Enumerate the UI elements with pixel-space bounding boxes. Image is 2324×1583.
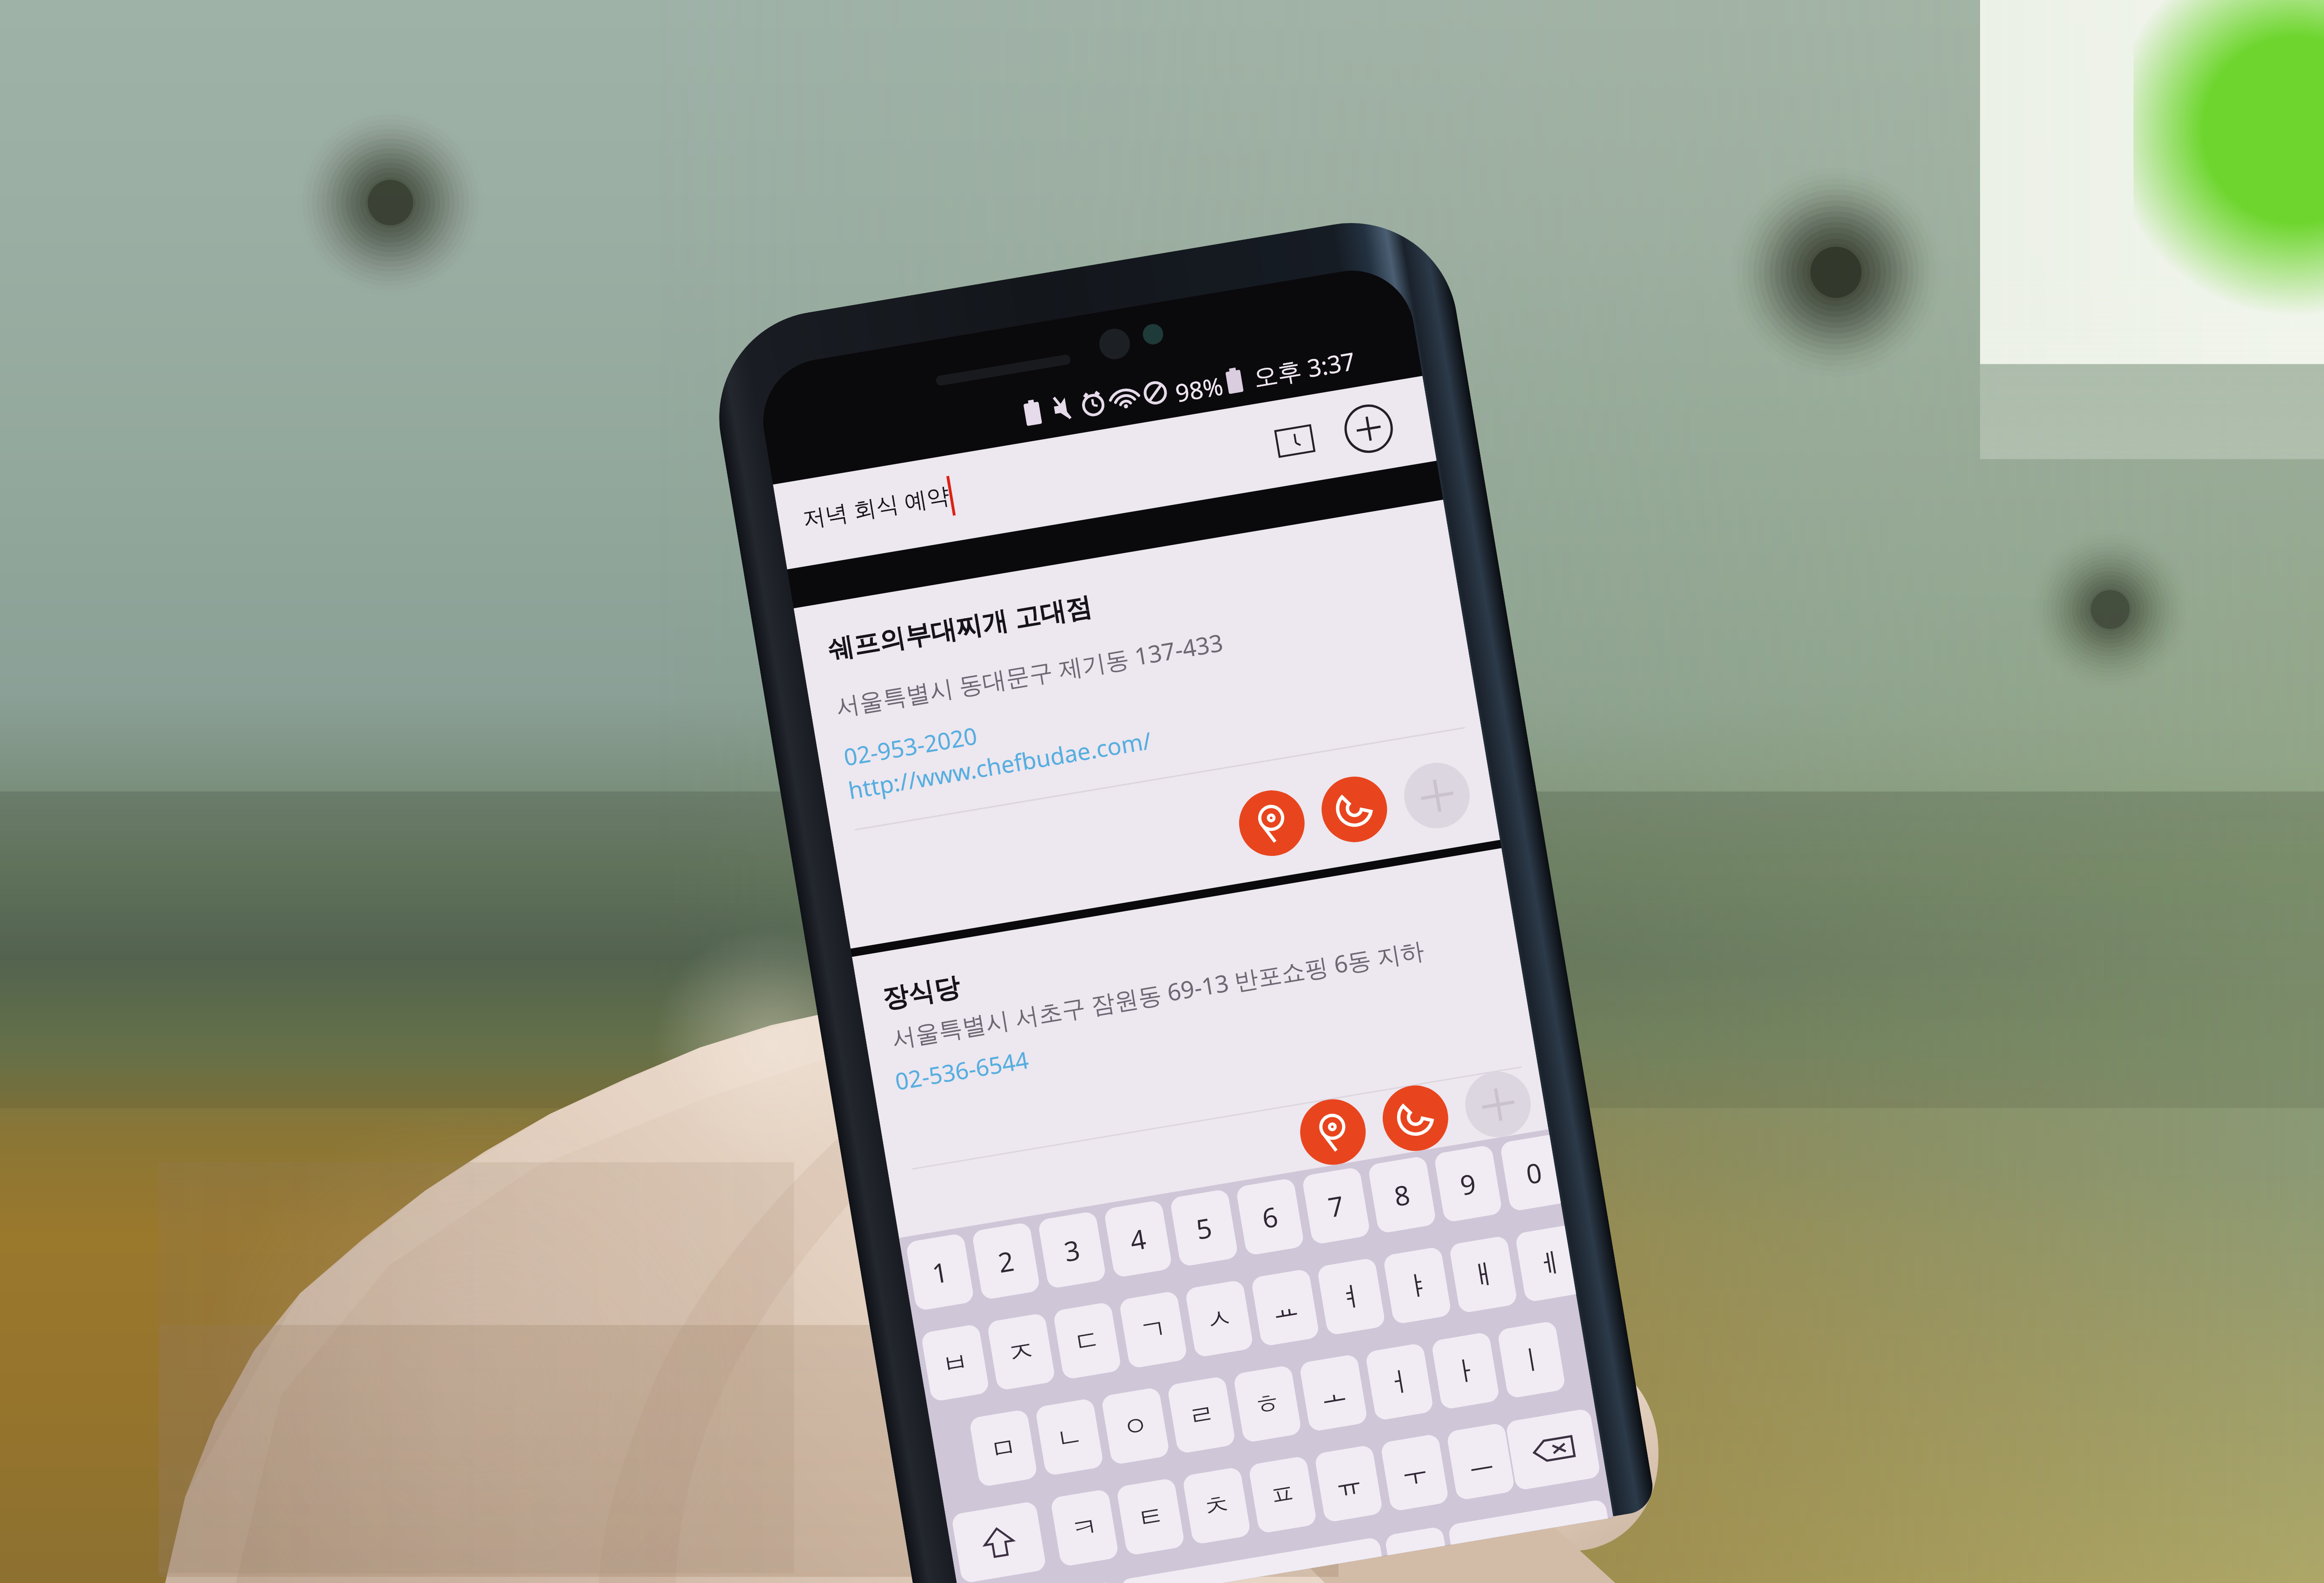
staticText: ㅐ <box>1467 1256 1499 1294</box>
button[interactable]: ㅡ <box>1446 1422 1515 1501</box>
staticText: 쉐프의부대찌개 고대점 <box>825 587 1094 666</box>
button[interactable]: Show on map <box>1295 1094 1371 1170</box>
staticText: 6 <box>1259 1198 1281 1236</box>
button[interactable]: Backspace <box>1505 1408 1601 1491</box>
button[interactable]: ㄱ <box>1119 1290 1188 1369</box>
staticText: ㅇ <box>1119 1407 1152 1445</box>
button[interactable]: 5 <box>1169 1189 1239 1267</box>
staticText: ㅓ <box>1383 1363 1416 1401</box>
staticText: ㄱ <box>1137 1311 1169 1349</box>
button[interactable]: Show on map <box>1234 785 1310 861</box>
staticText: 장식당 <box>880 970 962 1016</box>
button[interactable]: Add to list <box>1460 1067 1536 1142</box>
button[interactable]: ㅣ <box>1497 1321 1566 1399</box>
staticText: ㅎ <box>1251 1385 1284 1423</box>
staticText: . <box>1413 1549 1420 1551</box>
staticText: ㅏ <box>1449 1352 1482 1390</box>
staticText: ㅗ <box>1317 1374 1350 1412</box>
button[interactable]: ㅈ <box>987 1313 1056 1391</box>
button[interactable]: 3 <box>1037 1211 1107 1289</box>
staticText: 7 <box>1325 1187 1347 1225</box>
button[interactable]: ㅜ <box>1380 1433 1449 1512</box>
staticText: ㄹ <box>1185 1396 1218 1434</box>
staticText: ㅛ <box>1269 1289 1301 1327</box>
staticText: ㅌ <box>1135 1498 1167 1536</box>
staticText: 02-536-6544 <box>893 1044 1031 1097</box>
button[interactable]: ㅔ <box>1515 1225 1576 1303</box>
staticText: ㅕ <box>1335 1278 1367 1316</box>
staticText: 9 <box>1457 1164 1479 1203</box>
staticText: ㅠ <box>1333 1465 1365 1503</box>
button[interactable]: 4 <box>1103 1200 1173 1278</box>
button[interactable]: ㅎ <box>1233 1365 1302 1443</box>
button[interactable]: Shift <box>951 1501 1047 1583</box>
staticText: ㄴ <box>1053 1418 1086 1456</box>
staticText: 저녁 회식 예약 <box>800 479 952 534</box>
staticText: 02-953-2020 <box>841 720 980 773</box>
button[interactable]: 2 <box>971 1222 1041 1300</box>
staticText: ㅡ <box>1465 1443 1497 1481</box>
staticText: ㅅ <box>1203 1300 1235 1338</box>
button[interactable]: ㅇ <box>1101 1387 1170 1465</box>
button[interactable]: Call <box>1317 772 1392 847</box>
staticText: ㅊ <box>1201 1487 1233 1525</box>
button[interactable]: Add to list <box>1399 758 1475 833</box>
button[interactable]: ㅂ <box>921 1324 990 1402</box>
staticText: ㅁ <box>987 1429 1020 1467</box>
staticText: ㅜ <box>1399 1454 1431 1492</box>
staticText: ㄷ <box>1071 1322 1103 1360</box>
button[interactable]: 0 <box>1499 1135 1561 1212</box>
button[interactable]: ㅁ <box>969 1409 1038 1487</box>
button[interactable]: 한국어 <box>1119 1537 1382 1583</box>
button[interactable]: ㅓ <box>1365 1343 1434 1421</box>
button[interactable]: 완료 <box>1447 1499 1608 1545</box>
button[interactable]: ㅍ <box>1248 1455 1317 1534</box>
button[interactable]: ㅋ <box>1050 1489 1119 1567</box>
staticText: 서울특별시 서초구 잠원동 69-13 반포쇼핑 6동 지하 <box>889 933 1426 1054</box>
button[interactable]: 8 <box>1367 1156 1437 1234</box>
button[interactable]: ㅛ <box>1251 1268 1320 1347</box>
staticText: 3 <box>1061 1231 1083 1270</box>
button[interactable]: ㅗ <box>1299 1354 1368 1432</box>
button[interactable]: ㅕ <box>1317 1257 1386 1336</box>
button[interactable]: ㄹ <box>1167 1376 1236 1454</box>
staticText: ㅑ <box>1401 1267 1433 1305</box>
staticText: http://www.chefbudae.com/ <box>846 724 1154 806</box>
staticText: ㅍ <box>1267 1476 1299 1514</box>
staticText: 98% <box>1173 369 1225 409</box>
staticText: 서울특별시 동대문구 제기동 137-433 <box>833 626 1226 722</box>
staticText: 1 <box>929 1253 951 1292</box>
staticText: 5 <box>1193 1209 1215 1248</box>
button[interactable]: 1 <box>905 1233 975 1311</box>
button[interactable]: ㅊ <box>1182 1467 1251 1545</box>
button[interactable]: 저녁 회식 예약 <box>773 376 1437 569</box>
button[interactable]: Call <box>1378 1081 1453 1156</box>
button[interactable]: 6 <box>1235 1178 1305 1256</box>
button[interactable]: ㅏ <box>1431 1332 1500 1410</box>
button[interactable]: 9 <box>1433 1144 1503 1223</box>
button[interactable]: 장식당 <box>852 848 1574 1388</box>
staticText: ㅔ <box>1533 1245 1565 1283</box>
button[interactable]: 7 <box>1301 1167 1371 1245</box>
button[interactable]: ㅑ <box>1383 1246 1452 1325</box>
staticText: 2 <box>995 1242 1017 1281</box>
button[interactable]: ㄴ <box>1035 1398 1104 1476</box>
button[interactable]: Add item <box>1334 394 1403 464</box>
button[interactable]: ㅅ <box>1185 1279 1254 1358</box>
button[interactable]: Set reminder time <box>1263 409 1327 473</box>
button[interactable]: ㅐ <box>1449 1235 1518 1314</box>
button[interactable]: . <box>1384 1526 1445 1555</box>
staticText: 0 <box>1523 1153 1545 1192</box>
staticText: 4 <box>1127 1220 1149 1259</box>
staticText: ㅋ <box>1069 1509 1101 1547</box>
staticText: 8 <box>1391 1176 1413 1214</box>
button[interactable]: ㅠ <box>1314 1444 1383 1523</box>
staticText: ㅂ <box>939 1344 971 1382</box>
button[interactable]: ㅌ <box>1116 1478 1185 1556</box>
staticText: 오후 3:37 <box>1251 344 1358 393</box>
button[interactable]: ㄷ <box>1053 1302 1122 1380</box>
button[interactable]: 쉐프의부대찌개 고대점 <box>794 500 1500 949</box>
staticText: ㅣ <box>1515 1341 1548 1379</box>
staticText: ㅈ <box>1005 1333 1037 1371</box>
